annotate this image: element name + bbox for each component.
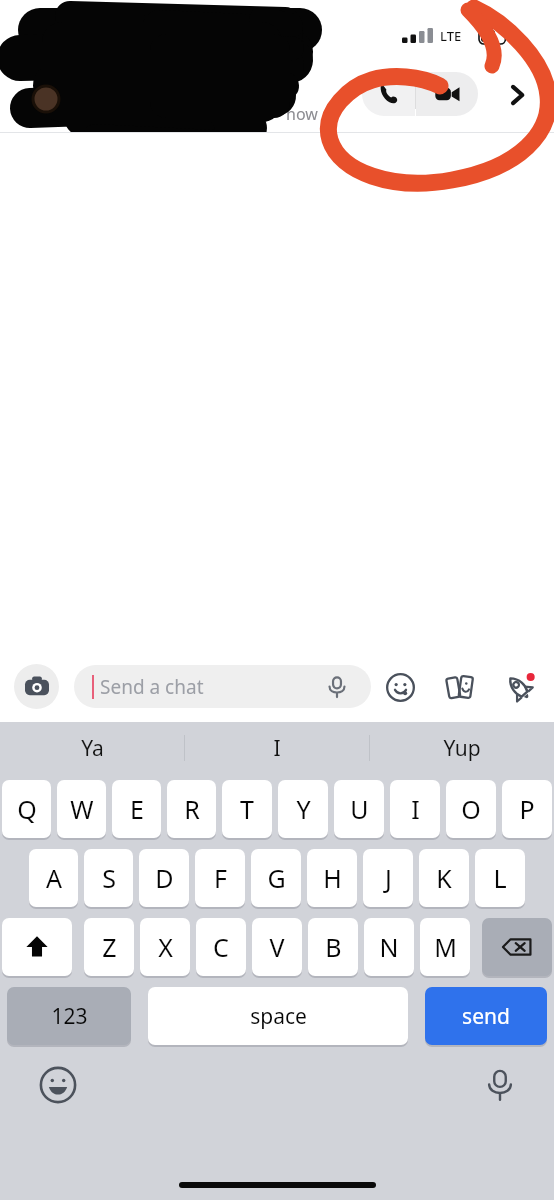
staticText: H bbox=[323, 861, 342, 895]
staticText: I bbox=[411, 792, 420, 826]
staticText: Z bbox=[102, 930, 117, 964]
button[interactable]: A bbox=[29, 849, 78, 907]
button[interactable]: Z bbox=[84, 918, 134, 976]
button[interactable]: Ya bbox=[0, 722, 184, 774]
staticText: K bbox=[436, 861, 452, 895]
button[interactable]: Stickers bbox=[384, 671, 416, 703]
staticText: T bbox=[240, 792, 254, 826]
staticText: space bbox=[250, 1002, 307, 1031]
staticText: M bbox=[434, 930, 457, 964]
staticText: send bbox=[462, 1002, 510, 1031]
staticText: I bbox=[273, 734, 281, 763]
button[interactable]: Y bbox=[278, 780, 328, 838]
button[interactable]: 123 bbox=[7, 987, 131, 1045]
staticText: S bbox=[102, 861, 116, 895]
staticText: 123 bbox=[51, 1002, 88, 1031]
staticText: O bbox=[461, 792, 481, 826]
staticText: LTE bbox=[440, 27, 462, 45]
button[interactable]: Voice input bbox=[478, 1063, 522, 1107]
button[interactable]: N bbox=[364, 918, 414, 976]
button[interactable]: U bbox=[334, 780, 384, 838]
button[interactable]: C bbox=[196, 918, 246, 976]
staticText: N bbox=[379, 930, 399, 964]
button[interactable]: P bbox=[502, 780, 552, 838]
staticText: Y bbox=[296, 792, 311, 826]
button[interactable]: L bbox=[475, 849, 525, 907]
button[interactable]: Open bbox=[496, 74, 538, 116]
button[interactable]: M bbox=[420, 918, 470, 976]
button[interactable]: B bbox=[308, 918, 358, 976]
button[interactable]: Voice message bbox=[322, 672, 352, 702]
staticText: E bbox=[130, 792, 144, 826]
button[interactable]: Shift bbox=[2, 918, 72, 976]
staticText: F bbox=[214, 861, 227, 895]
button[interactable]: D bbox=[139, 849, 189, 907]
button[interactable]: J bbox=[363, 849, 413, 907]
button[interactable]: Camera bbox=[14, 664, 59, 709]
button[interactable]: Games bbox=[502, 671, 536, 705]
staticText: J bbox=[385, 861, 392, 895]
button[interactable]: V bbox=[252, 918, 302, 976]
staticText: Send a chat bbox=[100, 674, 204, 700]
staticText: Q bbox=[17, 792, 37, 826]
button[interactable]: R bbox=[167, 780, 216, 838]
button[interactable]: H bbox=[307, 849, 357, 907]
button[interactable]: F bbox=[195, 849, 245, 907]
button[interactable]: X bbox=[140, 918, 190, 976]
staticText: X bbox=[158, 930, 173, 964]
staticText: U bbox=[350, 792, 369, 826]
staticText: B bbox=[325, 930, 342, 964]
button[interactable]: K bbox=[419, 849, 469, 907]
button[interactable]: Sticker packs bbox=[444, 671, 476, 703]
staticText: V bbox=[269, 930, 285, 964]
button[interactable]: Send a chat bbox=[74, 665, 371, 708]
button[interactable]: I bbox=[184, 722, 369, 774]
button[interactable]: I bbox=[390, 780, 440, 838]
button[interactable]: Yup bbox=[369, 722, 554, 774]
button[interactable]: send bbox=[425, 987, 547, 1045]
staticText: Yup bbox=[443, 734, 481, 763]
button[interactable]: T bbox=[222, 780, 272, 838]
staticText: P bbox=[519, 792, 535, 826]
button[interactable]: E bbox=[112, 780, 161, 838]
staticText: R bbox=[184, 792, 200, 826]
button[interactable]: Emoji bbox=[36, 1063, 80, 1107]
staticText: A bbox=[46, 861, 62, 895]
staticText: Ya bbox=[81, 734, 104, 763]
button[interactable]: S bbox=[84, 849, 133, 907]
staticText: D bbox=[155, 861, 174, 895]
button[interactable]: space bbox=[148, 987, 408, 1045]
button[interactable]: W bbox=[57, 780, 106, 838]
button[interactable]: Backspace bbox=[482, 918, 552, 976]
staticText: W bbox=[70, 792, 94, 826]
staticText: G bbox=[267, 861, 286, 895]
staticText: now bbox=[286, 103, 318, 125]
button[interactable]: Video call bbox=[416, 72, 478, 116]
staticText: C bbox=[213, 930, 229, 964]
button[interactable]: Q bbox=[2, 780, 51, 838]
staticText: L bbox=[493, 861, 507, 895]
button[interactable]: Voice call bbox=[362, 72, 415, 116]
button[interactable]: O bbox=[446, 780, 496, 838]
button[interactable]: G bbox=[251, 849, 301, 907]
